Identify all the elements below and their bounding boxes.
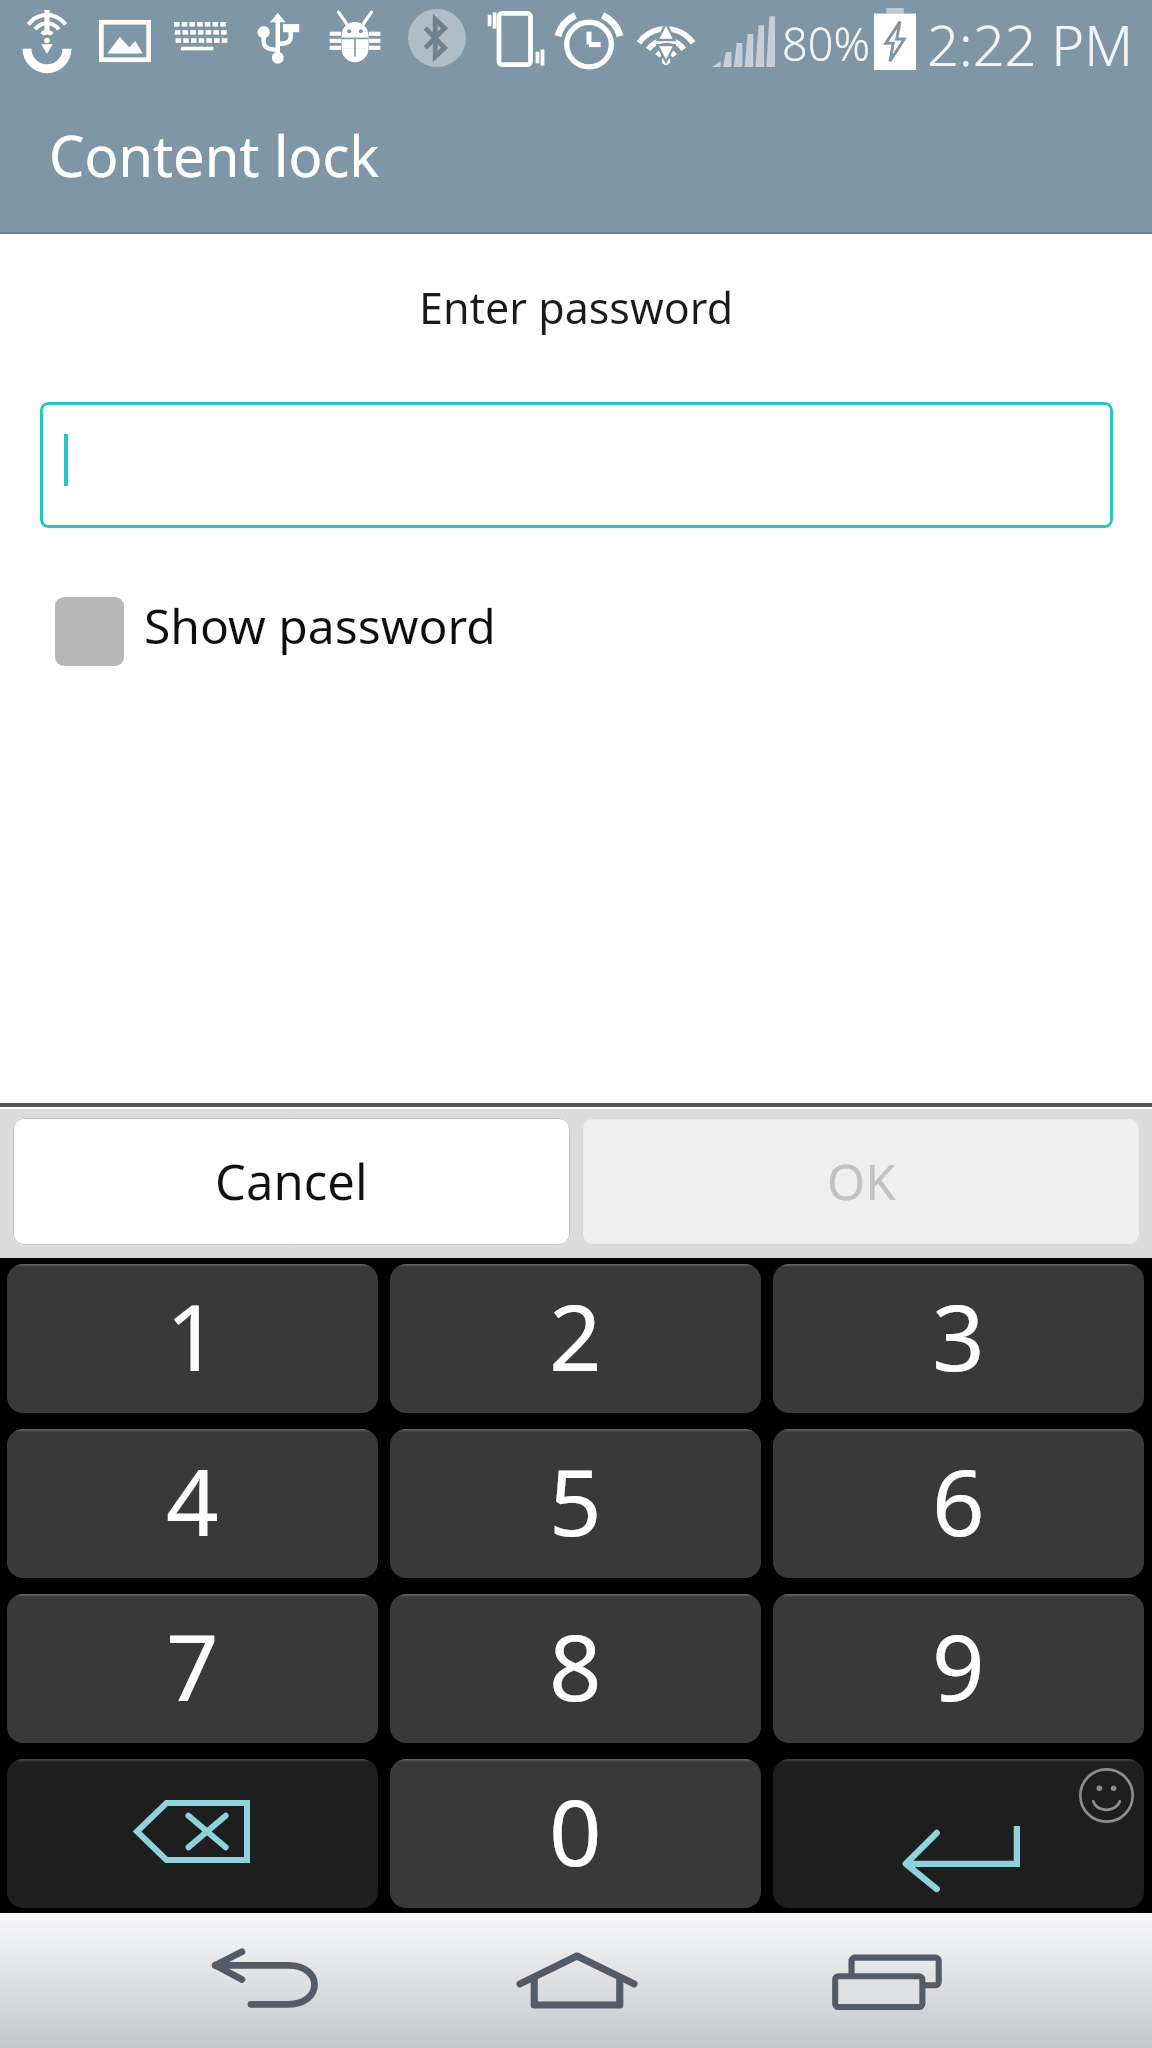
button[interactable]: Backspace	[7, 1759, 378, 1908]
button[interactable]: 9	[773, 1594, 1144, 1743]
button[interactable]: 7	[7, 1594, 378, 1743]
button[interactable]: Enter	[773, 1759, 1144, 1908]
button[interactable]: 1	[7, 1264, 378, 1413]
button[interactable]: 6	[773, 1429, 1144, 1578]
button[interactable]: Back	[168, 1913, 360, 2048]
staticText: 9	[932, 1603, 985, 1728]
staticText: Content lock	[49, 117, 380, 193]
button[interactable]: Home	[480, 1913, 672, 2048]
button[interactable]: OK	[582, 1118, 1140, 1245]
button[interactable]: 4	[7, 1429, 378, 1578]
staticText: 2	[549, 1273, 602, 1398]
button[interactable]	[40, 402, 1113, 528]
staticText: 80%	[782, 13, 870, 74]
staticText: 2:22 PM	[927, 6, 1133, 82]
button[interactable]: 0	[390, 1759, 761, 1908]
staticText: 0	[549, 1768, 602, 1893]
button[interactable]: 2	[390, 1264, 761, 1413]
button[interactable]: 5	[390, 1429, 761, 1578]
button[interactable]: 8	[390, 1594, 761, 1743]
button[interactable]: Recents	[792, 1913, 984, 2048]
staticText: 6	[932, 1438, 985, 1563]
staticText: Cancel	[215, 1148, 368, 1215]
staticText: 4	[166, 1438, 219, 1563]
staticText: 3	[932, 1273, 985, 1398]
button[interactable]: 3	[773, 1264, 1144, 1413]
staticText: 7	[166, 1603, 219, 1728]
button[interactable]: Cancel	[13, 1118, 570, 1245]
staticText: OK	[827, 1148, 896, 1215]
staticText: 8	[549, 1603, 602, 1728]
staticText: 1	[166, 1273, 219, 1398]
button[interactable]: Show password	[55, 583, 496, 667]
staticText: Enter password	[419, 278, 734, 337]
staticText: Show password	[144, 593, 496, 658]
staticText: 5	[549, 1438, 602, 1563]
